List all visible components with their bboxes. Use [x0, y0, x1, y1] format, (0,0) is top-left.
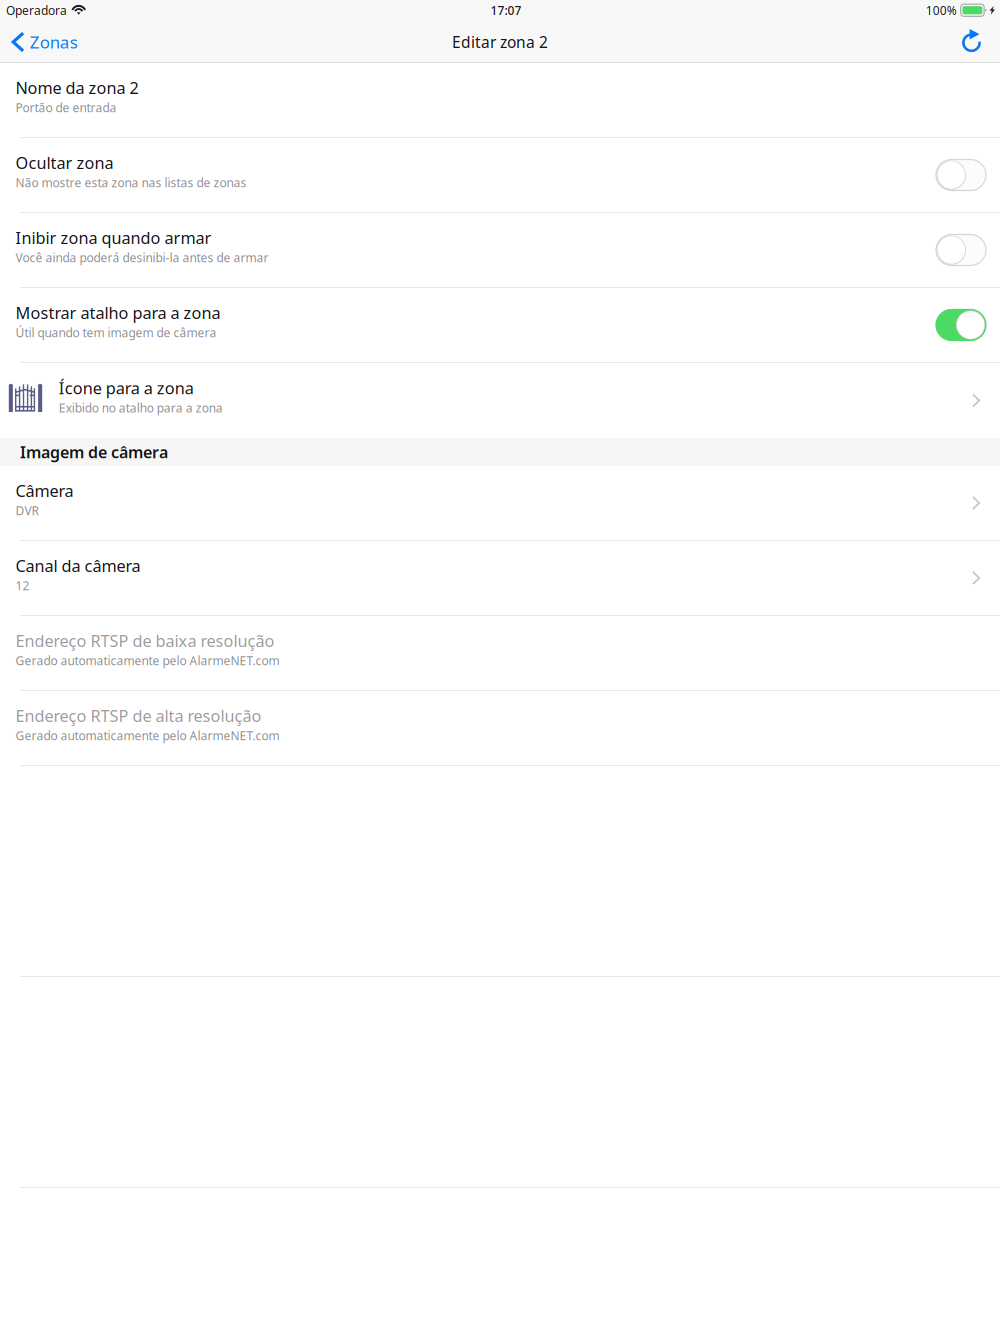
staticText: Operadora — [6, 2, 67, 18]
staticText: Zonas — [30, 31, 78, 53]
button[interactable]: Zonas — [0, 22, 88, 62]
button[interactable]: Mostrar atalho para a zona — [0, 288, 1000, 362]
staticText: Útil quando tem imagem de câmera — [15, 325, 216, 340]
button[interactable]: Inibir zona quando armar — [0, 213, 1000, 287]
button[interactable]: Ocultar zona — [0, 138, 1000, 212]
staticText: Gerado automaticamente pelo AlarmeNET.co… — [15, 653, 279, 668]
staticText: Imagem de câmera — [20, 441, 168, 463]
staticText: Mostrar atalho para a zona — [15, 302, 220, 324]
staticText: Exibido no atalho para a zona — [59, 400, 223, 416]
button[interactable]: Nome da zona 2 — [0, 63, 1000, 137]
staticText: Canal da câmera — [15, 555, 140, 577]
staticText: Você ainda poderá desinibi-la antes de a… — [15, 250, 268, 265]
staticText: Ícone para a zona — [59, 377, 194, 399]
staticText: DVR — [15, 503, 38, 518]
staticText: Gerado automaticamente pelo AlarmeNET.co… — [15, 728, 279, 743]
staticText: 12 — [15, 578, 29, 593]
button[interactable]: Atualizar — [948, 22, 1000, 62]
staticText: Portão de entrada — [15, 100, 116, 115]
button[interactable]: Câmera — [0, 466, 1000, 540]
button[interactable]: Ícone para a zona — [0, 363, 1000, 438]
staticText: 100% — [926, 2, 957, 18]
staticText: Inibir zona quando armar — [15, 227, 211, 249]
staticText: 17:07 — [490, 2, 521, 18]
staticText: Câmera — [15, 480, 73, 502]
staticText: Nome da zona 2 — [15, 77, 138, 99]
staticText: Ocultar zona — [15, 152, 113, 174]
staticText: Editar zona 2 — [452, 32, 548, 52]
button[interactable]: Endereço RTSP de baixa resolução — [0, 616, 1000, 690]
button[interactable]: Endereço RTSP de alta resolução — [0, 691, 1000, 765]
staticText: Endereço RTSP de alta resolução — [15, 705, 261, 727]
staticText: Não mostre esta zona nas listas de zonas — [15, 175, 246, 190]
button[interactable]: Canal da câmera — [0, 541, 1000, 615]
staticText: Endereço RTSP de baixa resolução — [15, 630, 274, 652]
